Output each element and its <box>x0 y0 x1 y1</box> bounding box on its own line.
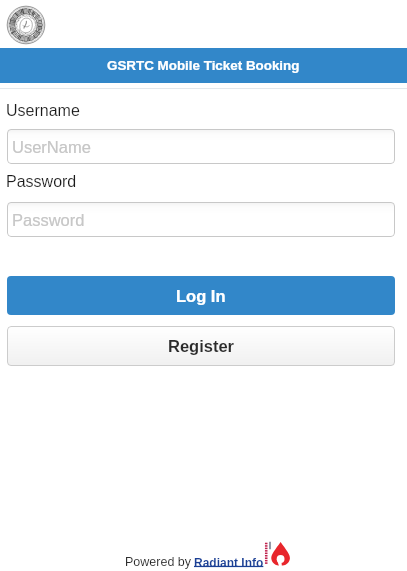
staticText: Log In <box>176 287 226 305</box>
staticText: GSRTC Mobile Ticket Booking <box>107 58 300 73</box>
staticText: Username <box>6 102 80 120</box>
button[interactable]: Log In <box>7 276 395 315</box>
button[interactable]: Password <box>7 202 395 237</box>
staticText: Register <box>168 337 235 355</box>
button[interactable]: Radiant Info <box>194 556 264 569</box>
staticText: Powered by <box>125 555 192 569</box>
staticText: Password <box>12 211 85 229</box>
staticText: Password <box>6 173 77 191</box>
staticText: UserName <box>12 138 91 156</box>
button[interactable]: UserName <box>7 129 395 164</box>
other: Radiant Info logo <box>264 541 291 566</box>
other: GSRTC emblem <box>7 6 45 44</box>
button[interactable]: Register <box>7 326 395 366</box>
